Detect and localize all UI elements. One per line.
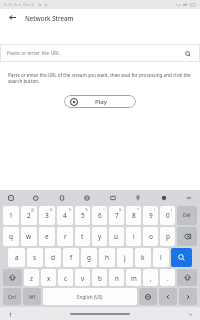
button[interactable]: 0 [159, 205, 176, 226]
staticText: ) [171, 207, 173, 212]
staticText: , [150, 274, 152, 282]
button[interactable]: Search [170, 247, 193, 268]
staticText: !#1 [29, 294, 36, 300]
button[interactable]: Home [70, 313, 130, 315]
button[interactable]: Shift right [176, 268, 198, 287]
button[interactable]: Shift [2, 268, 23, 287]
button[interactable]: , [142, 268, 159, 287]
button[interactable]: Previous [158, 287, 178, 306]
button[interactable]: Text edit [106, 191, 120, 205]
button[interactable]: a [7, 247, 26, 268]
staticText: 5 [81, 211, 85, 220]
staticText: l [160, 253, 162, 262]
button[interactable]: u [108, 226, 125, 247]
button[interactable]: p [159, 226, 176, 247]
button[interactable]: Sticker [4, 191, 18, 205]
staticText: s [33, 253, 37, 262]
button[interactable]: w [20, 226, 38, 247]
button[interactable]: !#1 [22, 287, 42, 306]
button[interactable]: Hide keyboard [185, 309, 195, 319]
button[interactable]: l [152, 247, 170, 268]
button[interactable]: j [116, 247, 134, 268]
staticText: j [124, 253, 126, 262]
button[interactable]: c [57, 268, 74, 287]
button[interactable]: Play [64, 95, 136, 108]
button[interactable]: 5 [74, 205, 91, 226]
button[interactable]: Back [6, 11, 19, 24]
button[interactable]: 6 [91, 205, 108, 226]
button[interactable]: Change language [138, 287, 158, 306]
staticText: m [131, 274, 137, 282]
staticText: d [51, 253, 55, 262]
button[interactable]: t [74, 226, 91, 247]
button[interactable]: English (US) [42, 287, 138, 306]
button[interactable]: 9 [142, 205, 159, 226]
button[interactable]: h [98, 247, 116, 268]
button[interactable]: g [80, 247, 98, 268]
staticText: Play [95, 98, 107, 106]
staticText: n [115, 274, 119, 282]
staticText: 6 [98, 211, 102, 220]
button[interactable]: 8 [125, 205, 142, 226]
button[interactable]: Next [178, 287, 198, 306]
staticText: . [167, 274, 169, 282]
button[interactable]: 7 [108, 205, 125, 226]
staticText: e [45, 232, 49, 241]
staticText: Ctrl [8, 294, 16, 300]
button[interactable]: n [108, 268, 125, 287]
button[interactable]: f [62, 247, 80, 268]
button[interactable]: Paste or enter the URL [0, 44, 200, 62]
button[interactable]: Backspace [176, 226, 198, 247]
staticText: Paste or enter the URL [7, 50, 60, 57]
button[interactable]: Voice input [5, 309, 15, 319]
staticText: 2 [27, 211, 31, 220]
button[interactable]: GIF [29, 191, 43, 205]
staticText: 5:34 Sun, Nov 3 [4, 2, 35, 7]
staticText: z [30, 274, 33, 282]
button[interactable]: Theme [157, 191, 171, 205]
button[interactable]: Voice [131, 191, 145, 205]
staticText: q [9, 232, 13, 241]
button[interactable]: 1 [2, 205, 20, 226]
button[interactable]: Clipboard [55, 191, 69, 205]
button[interactable]: r [56, 226, 74, 247]
button[interactable]: More [182, 191, 196, 205]
button[interactable]: Delete [176, 205, 198, 226]
button[interactable]: 3 [38, 205, 56, 226]
staticText: r [64, 232, 67, 241]
button[interactable]: q [2, 226, 20, 247]
staticText: ^ [103, 207, 105, 212]
button[interactable]: Search [182, 48, 193, 59]
staticText: Paste or enter the URL of the stream you… [8, 72, 192, 84]
button[interactable]: e [38, 226, 56, 247]
staticText: Del [183, 212, 191, 219]
staticText: u [114, 232, 119, 241]
staticText: 7 [115, 211, 119, 220]
staticText: 0 [166, 211, 170, 220]
button[interactable]: d [44, 247, 62, 268]
staticText: g [87, 253, 91, 262]
staticText: Network Stream [25, 14, 74, 22]
button[interactable]: k [134, 247, 152, 268]
button[interactable]: y [91, 226, 108, 247]
button[interactable]: z [23, 268, 40, 287]
button[interactable]: . [159, 268, 176, 287]
staticText: 3 [45, 211, 49, 220]
button[interactable]: 4 [56, 205, 74, 226]
button[interactable]: b [91, 268, 108, 287]
button[interactable]: i [125, 226, 142, 247]
staticText: t [81, 232, 84, 241]
staticText: v [81, 274, 85, 282]
staticText: w [26, 232, 32, 241]
staticText: x [47, 274, 51, 282]
button[interactable]: o [142, 226, 159, 247]
button[interactable]: x [40, 268, 57, 287]
button[interactable]: 2 [20, 205, 38, 226]
button[interactable]: Ctrl [2, 287, 22, 306]
button[interactable]: s [26, 247, 44, 268]
staticText: # [50, 207, 53, 212]
staticText: ( [154, 207, 156, 212]
button[interactable]: Translate [80, 191, 94, 205]
button[interactable]: v [74, 268, 91, 287]
button[interactable]: m [125, 268, 142, 287]
